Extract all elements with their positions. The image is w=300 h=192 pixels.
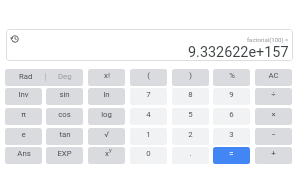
button[interactable]: × [255, 108, 292, 125]
button[interactable]: 7 [130, 88, 167, 105]
staticText: 9.332622e+157 [188, 44, 289, 61]
staticText: Rad [19, 72, 33, 81]
button[interactable]: History [8, 32, 22, 46]
button[interactable]: + [255, 147, 292, 164]
staticText: Inv [18, 90, 29, 99]
staticText: tan [59, 130, 71, 139]
button[interactable]: e [5, 128, 42, 145]
staticText: π [21, 110, 26, 119]
button[interactable]: 8 [172, 88, 209, 105]
button[interactable]: Rad [5, 69, 83, 86]
staticText: 4 [146, 110, 151, 119]
staticText: 1 [146, 130, 151, 139]
staticText: 2 [188, 130, 193, 139]
staticText: 3 [229, 130, 234, 139]
staticText: Deg [58, 72, 72, 81]
staticText: − [271, 130, 276, 139]
button[interactable]: . [172, 147, 209, 164]
button[interactable]: π [5, 108, 42, 125]
staticText: cos [58, 110, 71, 119]
staticText: 9 [229, 90, 234, 99]
staticText: EXP [57, 149, 72, 158]
staticText: x! [104, 71, 110, 80]
button[interactable]: log [88, 108, 125, 125]
button[interactable]: 1 [130, 128, 167, 145]
staticText: 6 [229, 110, 234, 119]
button[interactable]: AC [255, 69, 292, 86]
staticText: Ans [17, 149, 31, 158]
staticText: e [21, 130, 26, 139]
button[interactable]: 6 [213, 108, 250, 125]
button[interactable]: ( [130, 69, 167, 86]
staticText: log [101, 110, 112, 119]
staticText: × [271, 110, 276, 119]
staticText: √ [104, 130, 109, 139]
button[interactable]: ) [172, 69, 209, 86]
staticText: + [271, 149, 276, 158]
staticText: AC [268, 71, 279, 80]
button[interactable]: 2 [172, 128, 209, 145]
button[interactable]: 0 [130, 147, 167, 164]
button[interactable]: ln [88, 88, 125, 105]
staticText: y [109, 147, 112, 154]
button[interactable]: 5 [172, 108, 209, 125]
staticText: ln [103, 90, 110, 99]
staticText: ) [189, 71, 192, 80]
button[interactable]: sin [46, 88, 83, 105]
button[interactable]: 9 [213, 88, 250, 105]
button[interactable]: EXP [46, 147, 83, 164]
staticText: factorial(100) = [247, 36, 289, 43]
button[interactable]: tan [46, 128, 83, 145]
button[interactable]: ÷ [255, 88, 292, 105]
staticText: 5 [188, 110, 193, 119]
staticText: 0 [146, 149, 151, 158]
button[interactable]: 4 [130, 108, 167, 125]
button[interactable]: √ [88, 128, 125, 145]
staticText: ÷ [271, 90, 276, 99]
staticText: 7 [146, 90, 151, 99]
button[interactable]: Ans [5, 147, 42, 164]
staticText: % [229, 71, 235, 80]
button[interactable]: cos [46, 108, 83, 125]
staticText: = [229, 149, 234, 158]
staticText: sin [59, 90, 70, 99]
button[interactable]: = [213, 147, 250, 164]
button[interactable]: x! [88, 69, 125, 86]
staticText: . [189, 149, 192, 158]
button[interactable]: % [213, 69, 250, 86]
button[interactable]: x [88, 147, 125, 164]
staticText: ( [147, 71, 150, 80]
button[interactable]: − [255, 128, 292, 145]
staticText: x [105, 149, 109, 158]
staticText: 8 [188, 90, 193, 99]
button[interactable]: 3 [213, 128, 250, 145]
button[interactable]: Inv [5, 88, 42, 105]
